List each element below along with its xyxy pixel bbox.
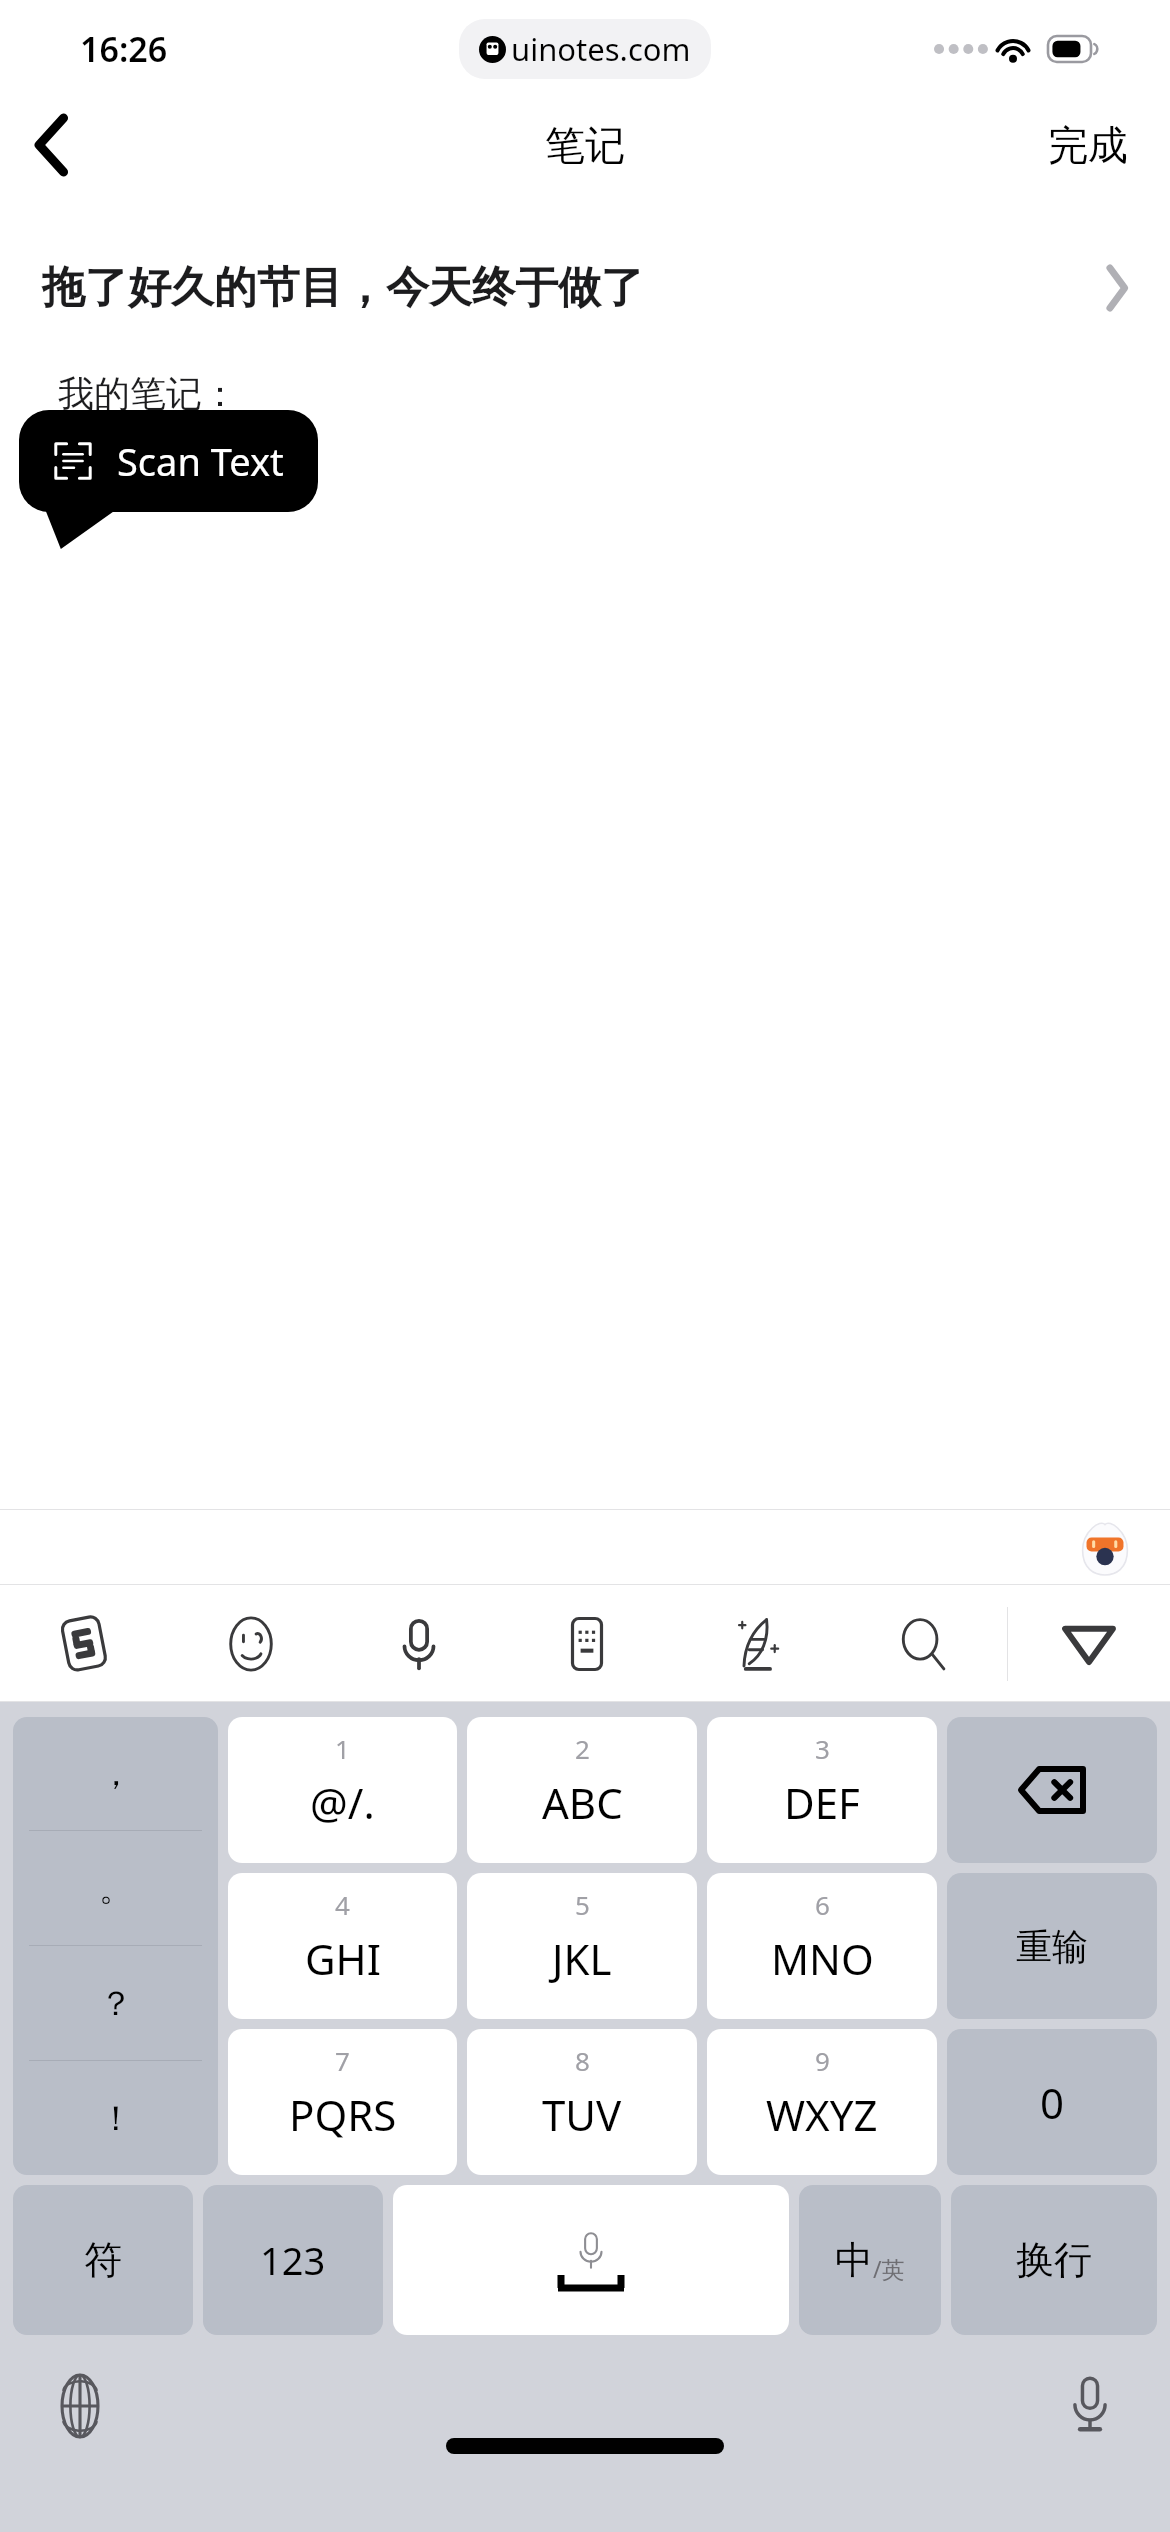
staticText: 换行 — [1016, 2236, 1092, 2284]
button[interactable]: 。 — [13, 1831, 218, 1945]
button[interactable]: ！ — [13, 2061, 218, 2175]
button[interactable]: Voice input — [1044, 2360, 1136, 2452]
staticText: 5 — [575, 1887, 590, 1922]
staticText: 16:26 — [80, 26, 168, 72]
staticText: 6 — [815, 1887, 830, 1922]
staticText: 0 — [1040, 2074, 1065, 2131]
staticText: 符 — [84, 2236, 122, 2284]
staticText: 完成 — [1048, 120, 1128, 170]
button[interactable]: 2 — [467, 1717, 697, 1863]
button[interactable]: 换行 — [951, 2185, 1157, 2335]
staticText: @/. — [310, 1774, 375, 1831]
staticText: ？ — [99, 1982, 133, 2025]
staticText: PQRS — [289, 2086, 397, 2143]
button[interactable]: 123 — [203, 2185, 383, 2335]
staticText: uinotes.com — [511, 28, 691, 70]
button[interactable]: Delete — [947, 1717, 1157, 1863]
staticText: DEF — [784, 1774, 860, 1831]
staticText: 笔记 — [545, 120, 625, 170]
button[interactable]: Sogou — [0, 1585, 167, 1702]
button[interactable]: 9 — [707, 2029, 937, 2175]
staticText: 7 — [335, 2043, 350, 2078]
button[interactable]: Keyboard layout — [503, 1585, 671, 1702]
button[interactable]: ， — [13, 1717, 218, 1830]
staticText: JKL — [552, 1930, 612, 1987]
button[interactable]: 8 — [467, 2029, 697, 2175]
button[interactable]: Back — [0, 93, 104, 197]
button[interactable]: Scan Text — [19, 410, 318, 512]
staticText: Scan Text — [117, 435, 284, 487]
button[interactable]: Switch language — [34, 2360, 126, 2452]
button[interactable]: Assistant — [1070, 1512, 1140, 1582]
staticText: GHI — [305, 1930, 381, 1987]
staticText: 中 — [835, 2236, 873, 2284]
button[interactable]: 6 — [707, 1873, 937, 2019]
staticText: 8 — [575, 2043, 590, 2078]
button[interactable]: 重输 — [947, 1873, 1157, 2019]
staticText: 9 — [815, 2043, 830, 2078]
staticText: 2 — [575, 1731, 590, 1766]
staticText: MNO — [771, 1930, 874, 1987]
staticText: 。 — [99, 1867, 133, 1910]
staticText: 拖了好久的节目，今天终于做了 — [42, 261, 1106, 315]
staticText: 3 — [815, 1731, 830, 1766]
staticText: 123 — [260, 2234, 326, 2286]
button[interactable]: 7 — [228, 2029, 457, 2175]
button[interactable]: Space — [393, 2185, 789, 2335]
button[interactable]: 0 — [947, 2029, 1157, 2175]
staticText: ！ — [99, 2097, 133, 2140]
button[interactable]: uinotes.com — [459, 19, 711, 79]
staticText: 1 — [335, 1731, 350, 1766]
button[interactable]: 5 — [467, 1873, 697, 2019]
button[interactable]: ？ — [13, 1946, 218, 2060]
button[interactable]: 符 — [13, 2185, 193, 2335]
staticText: 重输 — [1016, 1924, 1088, 1969]
button[interactable]: 完成 — [1006, 104, 1170, 186]
button[interactable]: Handwriting — [671, 1585, 839, 1702]
button[interactable]: 3 — [707, 1717, 937, 1863]
button[interactable]: 拖了好久的节目，今天终于做了 — [0, 261, 1170, 315]
staticText: ， — [99, 1752, 133, 1795]
button[interactable]: Hide keyboard — [1008, 1585, 1170, 1702]
staticText: 4 — [335, 1887, 350, 1922]
button[interactable]: Search — [839, 1585, 1007, 1702]
staticText: 我的笔记： — [58, 371, 238, 416]
button[interactable]: 4 — [228, 1873, 457, 2019]
button[interactable]: 中 — [799, 2185, 941, 2335]
staticText: TUV — [542, 2086, 622, 2143]
staticText: /英 — [873, 2253, 905, 2284]
staticText: ABC — [542, 1774, 623, 1831]
button[interactable]: 1 — [228, 1717, 457, 1863]
staticText: WXYZ — [766, 2086, 878, 2143]
button[interactable]: Voice input — [335, 1585, 503, 1702]
button[interactable]: Emoji — [167, 1585, 335, 1702]
